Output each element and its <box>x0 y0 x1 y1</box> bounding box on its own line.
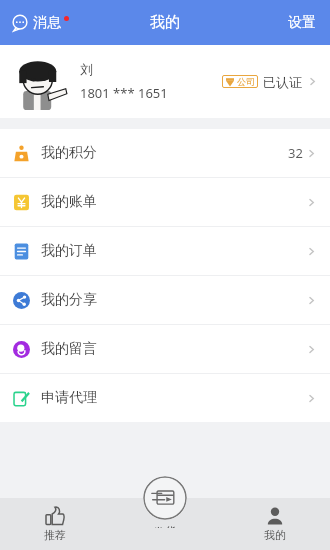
staticText: 32 <box>288 144 303 162</box>
staticText: 公司 <box>237 76 255 87</box>
staticText: 申请代理 <box>41 389 97 407</box>
button[interactable]: 我的订单 <box>0 227 330 275</box>
button[interactable]: 我的 <box>220 498 330 550</box>
staticText: 我的积分 <box>41 144 97 162</box>
staticText: 我的 <box>264 528 286 542</box>
staticText: 发货 <box>153 524 177 528</box>
staticText: 我的订单 <box>41 242 97 260</box>
staticText: 我的留言 <box>41 340 97 358</box>
staticText: 消息 <box>33 14 61 32</box>
button[interactable]: 我的积分 <box>0 129 330 177</box>
staticText: 1801 *** 1651 <box>80 84 168 102</box>
button[interactable]: 申请代理 <box>0 374 330 422</box>
button[interactable]: 设置 <box>274 4 330 42</box>
button[interactable]: 推荐 <box>0 498 110 550</box>
staticText: 推荐 <box>44 528 66 542</box>
staticText: 刘 <box>80 61 93 77</box>
button[interactable]: 刘 <box>0 45 330 118</box>
button[interactable]: 我的账单 <box>0 178 330 226</box>
button[interactable]: 发货 <box>133 476 197 528</box>
staticText: 我的账单 <box>41 193 97 211</box>
button[interactable]: 消息 <box>10 8 71 38</box>
staticText: 已认证 <box>263 74 302 90</box>
staticText: 我的分享 <box>41 291 97 309</box>
staticText: 我的 <box>150 13 180 32</box>
button[interactable]: 我的留言 <box>0 325 330 373</box>
button[interactable]: 我的分享 <box>0 276 330 324</box>
